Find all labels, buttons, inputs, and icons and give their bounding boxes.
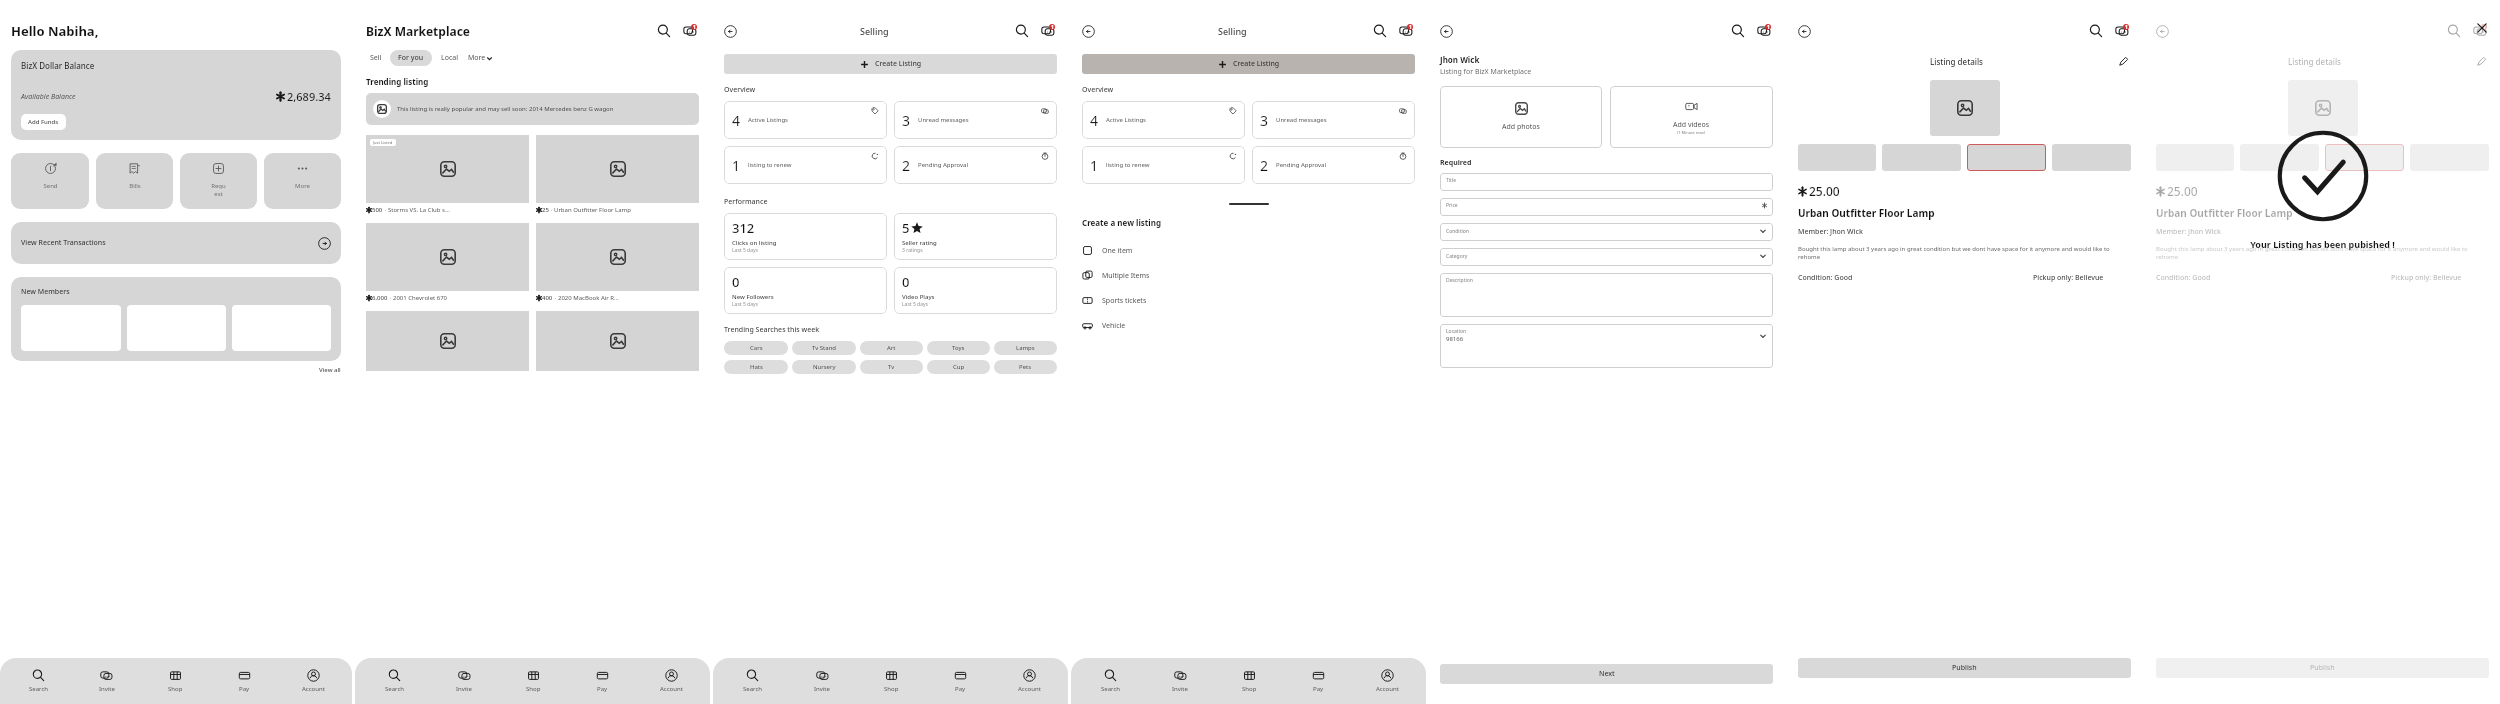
button[interactable]: Shop <box>857 658 926 704</box>
button[interactable]: Messages <box>2113 22 2131 40</box>
button[interactable]: Search <box>4 658 72 704</box>
button[interactable]: Cars <box>724 341 788 355</box>
button[interactable]: Account <box>279 658 348 704</box>
button[interactable]: 1 <box>1082 146 1245 184</box>
button[interactable]: Add photos <box>1440 86 1602 148</box>
button[interactable]: 312 <box>1082 213 1245 260</box>
button[interactable]: Pay <box>568 658 637 704</box>
button[interactable]: 2 <box>1252 146 1415 184</box>
button[interactable]: 312 <box>724 213 887 260</box>
button[interactable] <box>536 223 699 291</box>
button[interactable]: View all <box>319 366 341 374</box>
button[interactable] <box>2288 80 2358 136</box>
button[interactable]: Next <box>1440 664 1773 684</box>
button[interactable]: Add Funds <box>21 114 66 130</box>
button[interactable]: Tv Stand <box>792 341 856 355</box>
button[interactable]: Location <box>1440 324 1773 368</box>
button[interactable]: Cup <box>927 360 990 374</box>
button[interactable]: Messages <box>1039 22 1057 40</box>
button[interactable]: Condition <box>1440 223 1773 241</box>
button[interactable]: Requ est <box>180 153 257 209</box>
button[interactable]: Shop <box>499 658 568 704</box>
button[interactable]: Search <box>1729 22 1747 40</box>
button[interactable]: Invite <box>1145 658 1215 704</box>
button[interactable]: Messages <box>2471 22 2489 40</box>
button[interactable]: Nursery <box>792 360 856 374</box>
button[interactable]: One item <box>1082 238 1415 263</box>
button[interactable]: Invite <box>72 658 141 704</box>
button[interactable]: Hats <box>724 360 788 374</box>
button[interactable]: Edit <box>2116 54 2131 69</box>
button[interactable]: Title <box>1440 173 1773 191</box>
button[interactable]: New Members <box>11 277 341 361</box>
button[interactable] <box>366 311 529 371</box>
button[interactable] <box>366 223 529 291</box>
button[interactable] <box>536 135 699 203</box>
button[interactable] <box>1930 80 2000 136</box>
button[interactable]: Publish <box>1798 658 2131 678</box>
button[interactable]: Sell <box>366 50 386 66</box>
button[interactable]: Account <box>1353 658 1422 704</box>
button[interactable]: Account <box>995 658 1064 704</box>
button[interactable]: 2 <box>894 146 1057 184</box>
button[interactable]: Search <box>655 22 673 40</box>
button[interactable]: Price <box>1440 198 1773 216</box>
button[interactable]: For you <box>390 50 432 66</box>
button[interactable]: Messages <box>1397 22 1415 40</box>
button[interactable]: Search <box>359 658 429 704</box>
button[interactable]: Send <box>11 153 89 209</box>
button[interactable]: Search <box>717 658 787 704</box>
button[interactable] <box>2240 144 2319 171</box>
button[interactable]: Messages <box>681 22 699 40</box>
button[interactable]: Pay <box>926 658 995 704</box>
button[interactable]: Art <box>860 341 923 355</box>
button[interactable]: View Recent Transactions <box>11 222 341 264</box>
button[interactable]: 3 <box>1252 101 1415 139</box>
button[interactable]: Just Listed <box>366 135 529 203</box>
button[interactable]: Messages <box>1755 22 1773 40</box>
button[interactable]: Sports tickets <box>1082 288 1415 313</box>
button[interactable]: Toys <box>927 341 990 355</box>
button[interactable]: Search <box>1075 658 1145 704</box>
button[interactable]: BizX Dollar Balance <box>11 50 341 140</box>
button[interactable]: Invite <box>787 658 857 704</box>
button[interactable]: Vehicle <box>1082 313 1415 338</box>
button[interactable]: Edit <box>2474 54 2489 69</box>
button[interactable]: Search <box>1013 22 1031 40</box>
button[interactable]: Invite <box>429 658 499 704</box>
button[interactable]: Create Listing <box>724 54 1057 74</box>
button[interactable]: Publish <box>2156 658 2489 678</box>
button[interactable]: 0 <box>894 267 1057 314</box>
button[interactable]: More <box>264 153 341 209</box>
button[interactable]: Pay <box>210 658 279 704</box>
button[interactable]: 3 <box>894 101 1057 139</box>
button[interactable]: 1 <box>724 146 887 184</box>
button[interactable]: Close <box>2476 22 2488 34</box>
button[interactable]: Account <box>637 658 706 704</box>
button[interactable]: Lamps <box>994 341 1057 355</box>
button[interactable]: Pets <box>994 360 1057 374</box>
button[interactable]: Add videos <box>1610 86 1773 148</box>
button[interactable]: 4 <box>1082 101 1245 139</box>
button[interactable]: Tv <box>860 360 923 374</box>
button[interactable] <box>2325 144 2404 171</box>
button[interactable]: More <box>468 50 493 66</box>
button[interactable]: Shop <box>141 658 210 704</box>
button[interactable]: 5 <box>894 213 1057 260</box>
